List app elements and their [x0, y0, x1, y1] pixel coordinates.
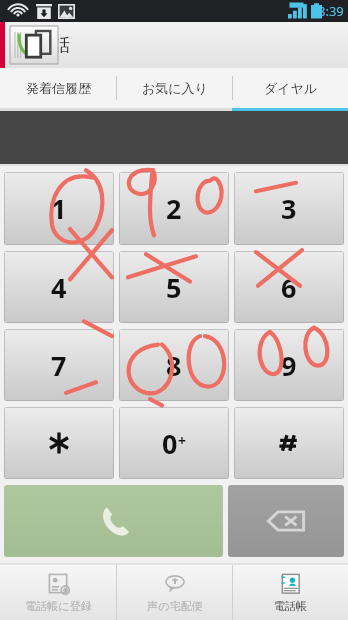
staticText: +: [178, 431, 187, 450]
staticText: 電話: [34, 34, 70, 57]
staticText: 0: [162, 425, 178, 462]
staticText: 8: [166, 347, 182, 384]
staticText: 声の宅配便: [147, 599, 203, 613]
button[interactable]: 6: [234, 251, 344, 323]
button[interactable]: 発信: [4, 485, 223, 557]
button[interactable]: 発着信履歴: [0, 68, 116, 108]
button[interactable]: 2: [119, 172, 229, 245]
staticText: 9: [281, 347, 297, 384]
button[interactable]: 7: [4, 329, 114, 401]
button[interactable]: 電話帳に登録: [0, 565, 116, 620]
button[interactable]: 削除: [228, 485, 344, 557]
staticText: 発着信履歴: [26, 80, 91, 96]
button[interactable]: 1: [4, 172, 114, 245]
button[interactable]: お気に入り: [117, 68, 232, 108]
button[interactable]: 声の宅配便: [117, 565, 232, 620]
staticText: 6: [281, 269, 297, 306]
staticText: お気に入り: [142, 80, 208, 96]
staticText: 4: [51, 269, 67, 306]
staticText: 5: [166, 269, 182, 306]
button[interactable]: 3: [234, 172, 344, 245]
button[interactable]: 4: [4, 251, 114, 323]
button[interactable]: Multi window: [10, 26, 58, 64]
staticText: 7: [51, 347, 67, 384]
staticText: 3: [281, 190, 297, 227]
button[interactable]: 電話帳: [233, 565, 348, 620]
staticText: ダイヤル: [264, 80, 318, 96]
staticText: 2: [166, 190, 182, 227]
staticText: 1: [51, 190, 67, 227]
button[interactable]: ダイヤル: [233, 68, 348, 108]
button[interactable]: 5: [119, 251, 229, 323]
staticText: 電話帳: [274, 599, 307, 613]
button[interactable]: 8: [119, 329, 229, 401]
button[interactable]: [4, 407, 114, 479]
button[interactable]: 0: [119, 407, 229, 479]
staticText: 8:39: [318, 2, 344, 20]
staticText: 電話帳に登録: [25, 599, 92, 613]
button[interactable]: [234, 407, 344, 479]
button[interactable]: 9: [234, 329, 344, 401]
